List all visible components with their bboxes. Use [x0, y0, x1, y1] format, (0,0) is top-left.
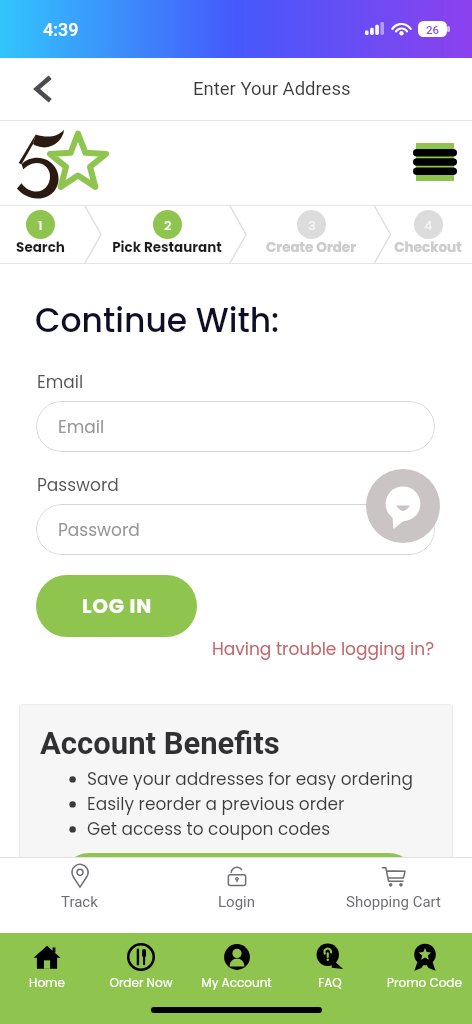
staticText: CREATE AN ACCOUNT [137, 869, 341, 884]
staticText: Email [58, 415, 105, 439]
staticText: Pick Restaurant [112, 238, 222, 257]
staticText: Easily reorder a previous order [87, 792, 345, 816]
button[interactable]: 2 [97, 206, 237, 263]
button[interactable]: Chat with us [366, 469, 440, 543]
staticText: 3 [308, 216, 316, 234]
staticText: LOG IN [82, 592, 152, 620]
button[interactable]: Promo Code [377, 933, 471, 1003]
button[interactable]: Email [36, 401, 435, 452]
staticText: Get access to coupon codes [87, 817, 331, 841]
staticText: 1 [38, 216, 43, 234]
button[interactable]: Track [19, 858, 139, 932]
staticText: Promo Code [387, 974, 462, 991]
button[interactable]: 4 [358, 206, 472, 263]
staticText: FAQ [318, 974, 342, 991]
button[interactable]: My Account [189, 933, 283, 1003]
staticText: 4:39 [43, 19, 79, 40]
button[interactable]: Order Now [94, 933, 188, 1003]
button[interactable]: Home [0, 933, 94, 1003]
staticText: Login [218, 893, 255, 911]
staticText: Enter Your Address [193, 78, 351, 100]
staticText: Track [61, 893, 98, 911]
staticText: 26 [426, 23, 440, 36]
button[interactable]: CREATE AN ACCOUNT [61, 853, 417, 884]
button[interactable]: LOG IN [36, 575, 197, 637]
staticText: 2 [164, 216, 172, 234]
button[interactable]: 1 [0, 206, 110, 263]
button[interactable]: FAQ [283, 933, 377, 1003]
staticText: Save your addresses for easy ordering [87, 767, 413, 791]
staticText: Password [58, 518, 140, 542]
staticText: Continue With: [35, 297, 280, 343]
staticText: 4 [424, 216, 433, 234]
staticText: Email [37, 370, 84, 394]
button[interactable]: Having trouble logging in? [212, 637, 435, 661]
button[interactable]: Login [176, 858, 296, 932]
button[interactable]: Password [36, 504, 435, 555]
staticText: Password [37, 473, 119, 497]
staticText: Home [29, 974, 65, 991]
staticText: Checkout [394, 238, 462, 257]
staticText: Search [16, 238, 65, 257]
button[interactable]: 3 [241, 206, 381, 263]
button[interactable]: Back [22, 68, 64, 110]
staticText: Shopping Cart [346, 893, 441, 911]
staticText: My Account [201, 974, 272, 991]
staticText: Order Now [109, 974, 173, 991]
button[interactable]: Shopping Cart [333, 858, 453, 932]
staticText: Account Benefits [40, 725, 280, 761]
staticText: Create Order [266, 238, 356, 257]
button[interactable]: Menu [416, 143, 454, 181]
